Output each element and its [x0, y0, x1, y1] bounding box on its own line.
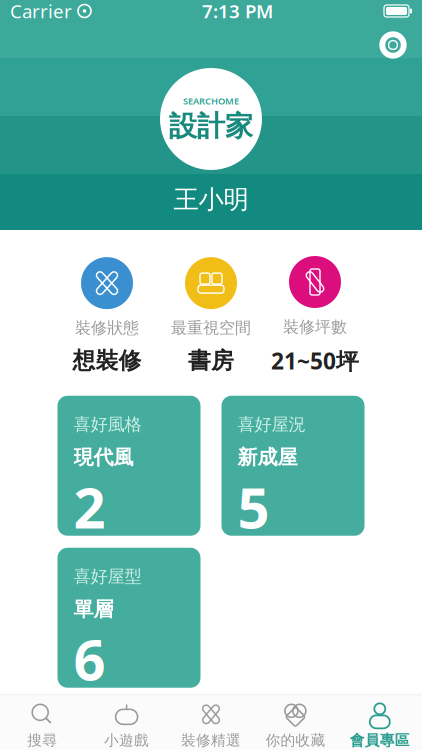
staticText: 最重視空間: [171, 318, 251, 338]
staticText: 王小明: [173, 184, 248, 215]
staticText: 裝修精選: [181, 731, 241, 749]
staticText: 想裝修: [72, 347, 141, 375]
button[interactable]: 小遊戲: [84, 695, 169, 750]
staticText: %: [108, 739, 124, 750]
button[interactable]: 喜好風格: [57, 396, 200, 536]
staticText: 68: [73, 622, 105, 750]
staticText: 喜好風格: [73, 414, 141, 435]
staticText: SEARCHOME: [183, 95, 239, 107]
staticText: %: [108, 587, 124, 611]
button[interactable]: Settings: [372, 24, 414, 66]
staticText: 你的收藏: [265, 731, 325, 749]
staticText: 喜好屋況: [237, 414, 305, 435]
staticText: 小遊戲: [104, 731, 149, 749]
staticText: 搜尋: [27, 731, 57, 749]
button[interactable]: 喜好屋況: [221, 396, 364, 536]
staticText: 7:13 PM: [202, 0, 273, 23]
staticText: 裝修坪數: [283, 317, 347, 337]
button[interactable]: 會員專區: [338, 695, 422, 750]
button[interactable]: 搜尋: [0, 695, 84, 750]
staticText: 21~50坪: [271, 346, 359, 376]
button[interactable]: 裝修坪數: [263, 256, 367, 376]
staticText: 書房: [188, 347, 234, 375]
button[interactable]: 你的收藏: [253, 695, 338, 750]
staticText: 設計家: [169, 109, 253, 143]
staticText: 新成屋: [237, 445, 297, 470]
staticText: 會員專區: [350, 731, 410, 749]
staticText: 單層: [73, 597, 113, 622]
staticText: 喜好屋型: [73, 566, 141, 587]
button[interactable]: 最重視空間: [159, 257, 263, 375]
staticText: 56: [237, 470, 269, 618]
button[interactable]: 裝修精選: [169, 695, 253, 750]
button[interactable]: 喜好屋型: [57, 548, 200, 688]
staticText: Carrier: [10, 0, 72, 23]
staticText: 現代風: [73, 445, 133, 470]
button[interactable]: 裝修狀態: [55, 257, 159, 375]
staticText: 裝修狀態: [75, 318, 139, 338]
staticText: 21: [73, 470, 105, 618]
